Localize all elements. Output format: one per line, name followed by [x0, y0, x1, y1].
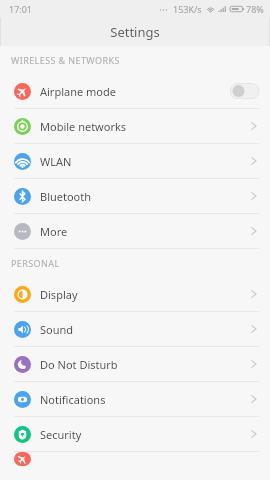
- button[interactable]: Mobile networks: [0, 109, 270, 143]
- button[interactable]: More: [0, 214, 270, 248]
- button[interactable]: WLAN: [0, 144, 270, 178]
- button[interactable]: Bluetooth: [0, 179, 270, 213]
- staticText: Settings: [110, 23, 160, 41]
- staticText: WIRELESS & NETWORKS: [11, 54, 120, 66]
- button[interactable]: Notifications: [0, 382, 270, 416]
- staticText: Bluetooth: [40, 189, 92, 204]
- button[interactable]: Sound: [0, 312, 270, 346]
- button[interactable]: Display: [0, 277, 270, 311]
- staticText: Mobile networks: [40, 119, 127, 134]
- button[interactable]: Security: [0, 417, 270, 451]
- staticText: PERSONAL: [11, 257, 60, 269]
- button[interactable]: Airplane mode toggle: [230, 83, 259, 99]
- staticText: Airplane mode: [40, 84, 116, 99]
- staticText: Notifications: [40, 392, 106, 407]
- staticText: Display: [40, 287, 78, 302]
- staticText: 78%: [246, 3, 264, 15]
- button[interactable]: [0, 452, 270, 466]
- staticText: Sound: [40, 322, 74, 337]
- staticText: More: [40, 224, 68, 239]
- staticText: 17:01: [9, 3, 33, 15]
- staticText: WLAN: [40, 154, 72, 169]
- staticText: Do Not Disturb: [40, 357, 118, 372]
- button[interactable]: Do Not Disturb: [0, 347, 270, 381]
- button[interactable]: Airplane mode: [0, 74, 270, 108]
- staticText: 153K/s: [173, 3, 202, 15]
- staticText: Security: [40, 427, 82, 442]
